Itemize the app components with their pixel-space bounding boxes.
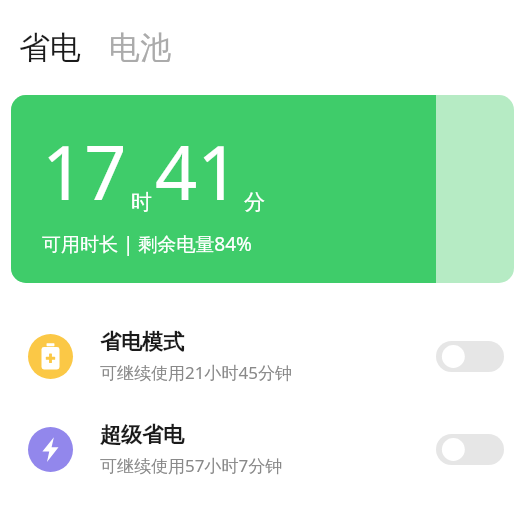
staticText: 可继续使用57小时7分钟 <box>100 454 283 477</box>
button[interactable]: 17 <box>11 95 514 283</box>
button[interactable]: 省电 <box>16 22 84 73</box>
staticText: 41 <box>155 121 240 222</box>
staticText: 时 <box>131 189 152 215</box>
button[interactable]: 电池 <box>106 22 174 73</box>
staticText: 可用时长 | 剩余电量84% <box>42 231 252 257</box>
staticText: 省电 <box>19 28 81 67</box>
staticText: 17 <box>42 121 127 222</box>
button[interactable]: 超级省电 开关 <box>436 434 504 465</box>
button[interactable]: 省电模式 开关 <box>436 341 504 372</box>
staticText: 超级省电 <box>100 422 184 448</box>
staticText: 省电模式 <box>100 329 184 355</box>
staticText: 分 <box>244 189 265 215</box>
staticText: 可继续使用21小时45分钟 <box>100 361 292 384</box>
button[interactable]: 省电模式 <box>0 329 525 384</box>
staticText: 电池 <box>109 28 171 67</box>
button[interactable]: 超级省电 <box>0 422 525 477</box>
